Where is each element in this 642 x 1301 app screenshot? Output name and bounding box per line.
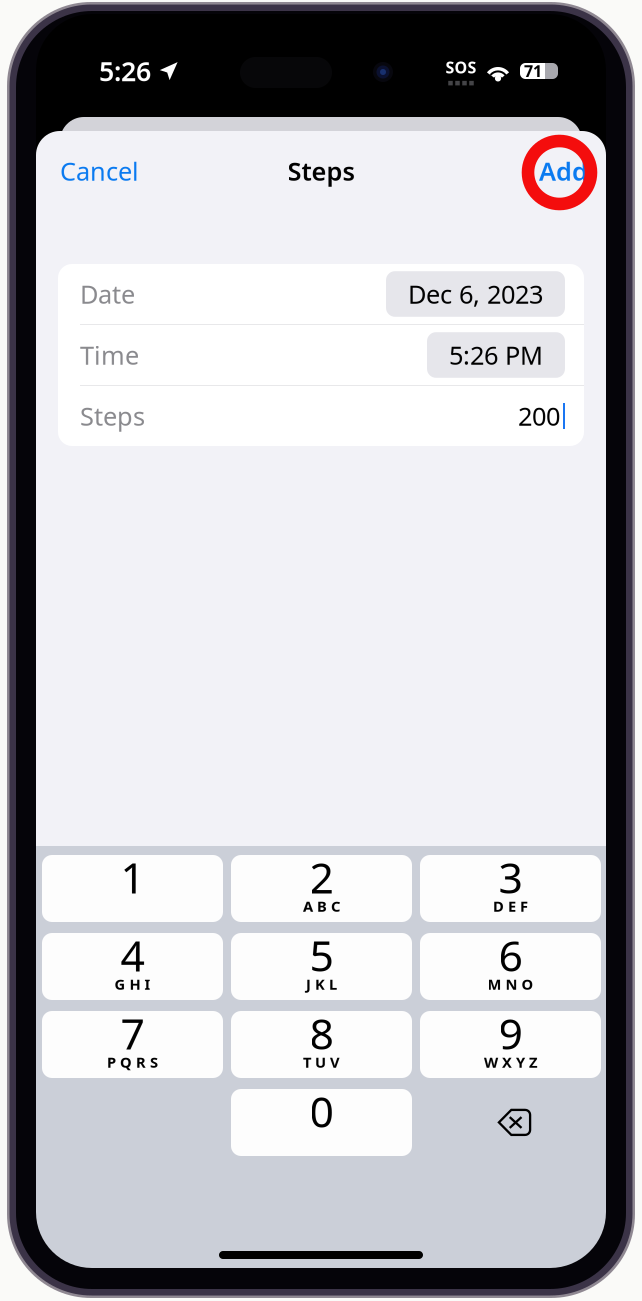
- button[interactable]: 5:26 PM: [427, 332, 565, 378]
- staticText: 71: [524, 60, 542, 82]
- staticText: 3: [498, 849, 522, 905]
- staticText: 5:26 PM: [449, 338, 543, 372]
- staticText: Add: [539, 154, 588, 188]
- staticText: 1: [120, 849, 144, 905]
- staticText: G H I: [114, 974, 150, 994]
- staticText: P Q R S: [107, 1052, 158, 1072]
- button[interactable]: 5: [231, 933, 412, 1000]
- staticText: Cancel: [60, 154, 139, 188]
- button[interactable]: Cancel: [36, 141, 155, 201]
- staticText: A B C: [303, 896, 340, 916]
- staticText: 200: [518, 399, 560, 433]
- staticText: Time: [80, 338, 139, 372]
- button[interactable]: 8: [231, 1011, 412, 1078]
- staticText: 5: [309, 927, 333, 983]
- button[interactable]: 0: [231, 1089, 412, 1156]
- staticText: W X Y Z: [484, 1052, 537, 1072]
- staticText: Dec 6, 2023: [408, 277, 543, 311]
- staticText: Date: [80, 277, 135, 311]
- staticText: Steps: [80, 399, 145, 433]
- staticText: SOS: [445, 57, 476, 78]
- button[interactable]: Add: [523, 141, 606, 201]
- staticText: Steps: [287, 154, 354, 188]
- button[interactable]: 9: [420, 1011, 601, 1078]
- staticText: 7: [120, 1005, 144, 1061]
- staticText: 4: [120, 927, 144, 983]
- staticText: 8: [309, 1005, 333, 1061]
- button[interactable]: 2: [231, 855, 412, 922]
- staticText: 5:26: [99, 53, 151, 89]
- staticText: 6: [498, 927, 522, 983]
- button[interactable]: Dec 6, 2023: [386, 271, 565, 317]
- staticText: 0: [309, 1083, 333, 1139]
- button[interactable]: 1: [42, 855, 223, 922]
- staticText: T U V: [303, 1052, 340, 1072]
- staticText: J K L: [306, 974, 337, 994]
- button[interactable]: 6: [420, 933, 601, 1000]
- staticText: D E F: [493, 896, 528, 916]
- button[interactable]: Delete: [420, 1089, 601, 1156]
- staticText: 2: [309, 849, 333, 905]
- staticText: M N O: [487, 974, 533, 994]
- button[interactable]: 7: [42, 1011, 223, 1078]
- staticText: 9: [498, 1005, 522, 1061]
- button[interactable]: 3: [420, 855, 601, 922]
- button[interactable]: 4: [42, 933, 223, 1000]
